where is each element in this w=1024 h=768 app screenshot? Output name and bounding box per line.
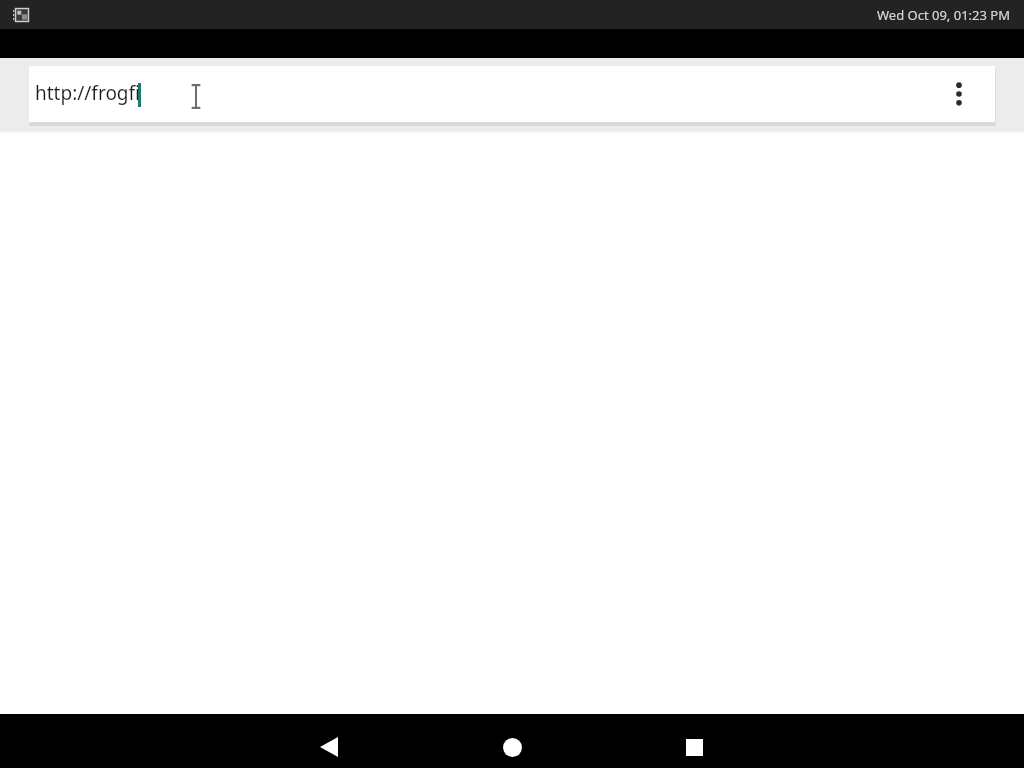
staticText: Wed Oct 09, 01:23 PM: [876, 6, 1010, 24]
button[interactable]: Home: [490, 725, 534, 768]
button[interactable]: Back: [307, 725, 351, 768]
button[interactable]: More options: [937, 72, 981, 116]
button[interactable]: Recent apps: [672, 725, 716, 768]
button[interactable]: Screenshot notification: [13, 6, 31, 24]
button[interactable]: http://frogfi: [29, 66, 995, 122]
staticText: http://frogfi: [35, 80, 140, 106]
